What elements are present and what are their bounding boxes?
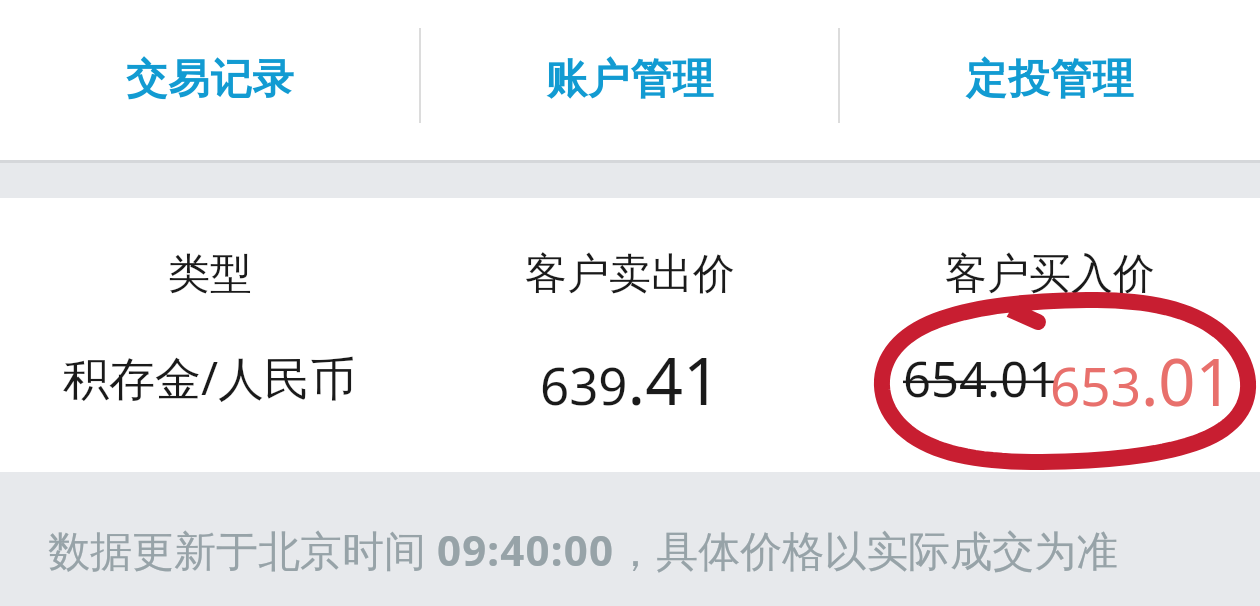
staticText: 账户管理 [546,54,715,106]
staticText: 定投管理 [966,54,1135,106]
staticText: 客户卖出价 [525,248,735,301]
button[interactable]: 定投管理 [840,0,1260,160]
button[interactable]: 账户管理 [420,0,840,160]
staticText: 类型 [168,248,252,301]
staticText: 数据更新于北京时间 09:40:00，具体价格以实际成交为准 [48,521,1119,578]
other: Highlighted buy price 653.01 [0,0,1260,606]
staticText: 639.41 [540,334,721,424]
staticText: 客户买入价 [945,248,1155,301]
staticText: 654.01 [903,345,1057,412]
staticText: 653.01 [1050,337,1233,426]
staticText: 交易记录 [126,54,295,106]
button[interactable]: 交易记录 [0,0,420,160]
staticText: 积存金/人民币 [63,346,357,409]
button[interactable]: 积存金/人民币 [0,346,1260,446]
